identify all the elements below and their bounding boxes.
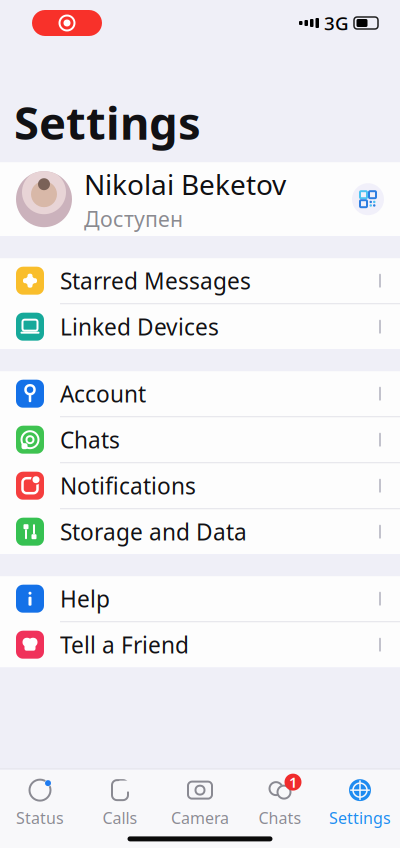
staticText: Settings — [329, 807, 391, 828]
staticText: Camera — [171, 807, 229, 828]
button[interactable]: Help — [0, 576, 400, 621]
staticText: Notifications — [60, 471, 196, 501]
button[interactable]: Linked Devices — [0, 304, 400, 349]
button[interactable]: Notifications — [0, 463, 400, 508]
button[interactable]: Camera — [160, 777, 240, 828]
button[interactable]: Storage and Data — [0, 509, 400, 554]
button[interactable]: Status — [0, 777, 80, 828]
staticText: Calls — [102, 807, 137, 828]
staticText: Help — [60, 584, 110, 614]
button[interactable]: Account — [0, 371, 400, 416]
button[interactable]: Profile, Nikolai Beketov — [0, 162, 400, 236]
staticText: 1 — [289, 772, 297, 792]
staticText: Tell a Friend — [60, 630, 189, 660]
staticText: Status — [16, 807, 64, 828]
staticText: Linked Devices — [60, 312, 219, 342]
staticText: Nikolai Beketov — [84, 165, 286, 203]
staticText: Account — [60, 379, 146, 409]
staticText: Starred Messages — [60, 266, 251, 296]
staticText: Storage and Data — [60, 517, 247, 547]
button[interactable]: Calls — [80, 777, 160, 828]
button[interactable]: 1 — [240, 777, 320, 828]
button[interactable]: Tell a Friend — [0, 622, 400, 667]
button[interactable]: Starred Messages — [0, 258, 400, 303]
staticText: 3G — [324, 11, 349, 35]
staticText: Chats — [60, 425, 120, 455]
button[interactable]: Settings — [320, 777, 400, 828]
staticText: Settings — [14, 92, 201, 152]
staticText: Доступен — [84, 205, 183, 233]
staticText: Chats — [258, 807, 301, 828]
button[interactable]: Chats — [0, 417, 400, 462]
